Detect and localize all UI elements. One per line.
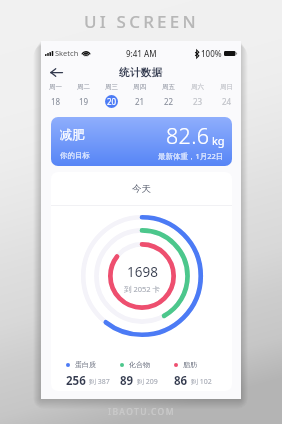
staticText: 256 [66, 373, 86, 389]
staticText: 周六 [191, 83, 204, 91]
button[interactable]: 周四 [125, 82, 154, 110]
staticText: 9:41 AM [126, 48, 157, 59]
staticText: 今天 [132, 183, 151, 195]
button[interactable]: 周二 [69, 82, 97, 110]
staticText: kg [212, 133, 225, 148]
staticText: 到 387 [89, 377, 110, 387]
button[interactable]: 周一 [41, 82, 69, 110]
staticText: IBAOTU.COM [108, 406, 175, 418]
staticText: 到 102 [191, 377, 212, 387]
staticText: 到 209 [137, 377, 158, 387]
button[interactable]: 周三 [97, 82, 125, 110]
button[interactable]: 周五 [154, 82, 183, 110]
staticText: 22 [164, 96, 174, 107]
staticText: 89 [120, 373, 134, 389]
staticText: 82.6 [166, 121, 210, 150]
staticText: 24 [222, 96, 232, 107]
staticText: 20 [107, 96, 117, 107]
staticText: 100% [201, 48, 222, 59]
staticText: 周三 [105, 83, 118, 91]
staticText: 蛋白质 [75, 360, 96, 369]
staticText: 你的目标 [60, 151, 90, 160]
button[interactable]: 蛋白质 [66, 360, 120, 389]
staticText: 周日 [220, 83, 233, 91]
staticText: 23 [193, 96, 203, 107]
staticText: 到 2052 卡 [124, 284, 161, 294]
staticText: 最新体重，1月22日 [158, 151, 224, 161]
staticText: 周一 [49, 83, 62, 91]
button[interactable]: 减肥 [51, 117, 232, 166]
staticText: 脂肪 [183, 360, 197, 369]
staticText: 化合物 [129, 360, 150, 369]
button[interactable]: 脂肪 [174, 360, 228, 389]
button[interactable]: Back [44, 60, 68, 84]
staticText: 周五 [162, 83, 175, 91]
staticText: 周四 [133, 83, 146, 91]
staticText: 统计数据 [119, 66, 163, 79]
staticText: Sketch [55, 48, 79, 58]
button[interactable]: 周日 [212, 82, 241, 110]
staticText: 周二 [77, 83, 90, 91]
button[interactable]: 周六 [183, 82, 212, 110]
staticText: 86 [174, 373, 188, 389]
staticText: 18 [51, 96, 61, 107]
staticText: 1698 [127, 263, 158, 281]
staticText: UI SCREEN [84, 10, 199, 33]
button[interactable]: 化合物 [120, 360, 174, 389]
staticText: 19 [79, 96, 89, 107]
staticText: 减肥 [60, 127, 85, 143]
staticText: 21 [135, 96, 145, 107]
